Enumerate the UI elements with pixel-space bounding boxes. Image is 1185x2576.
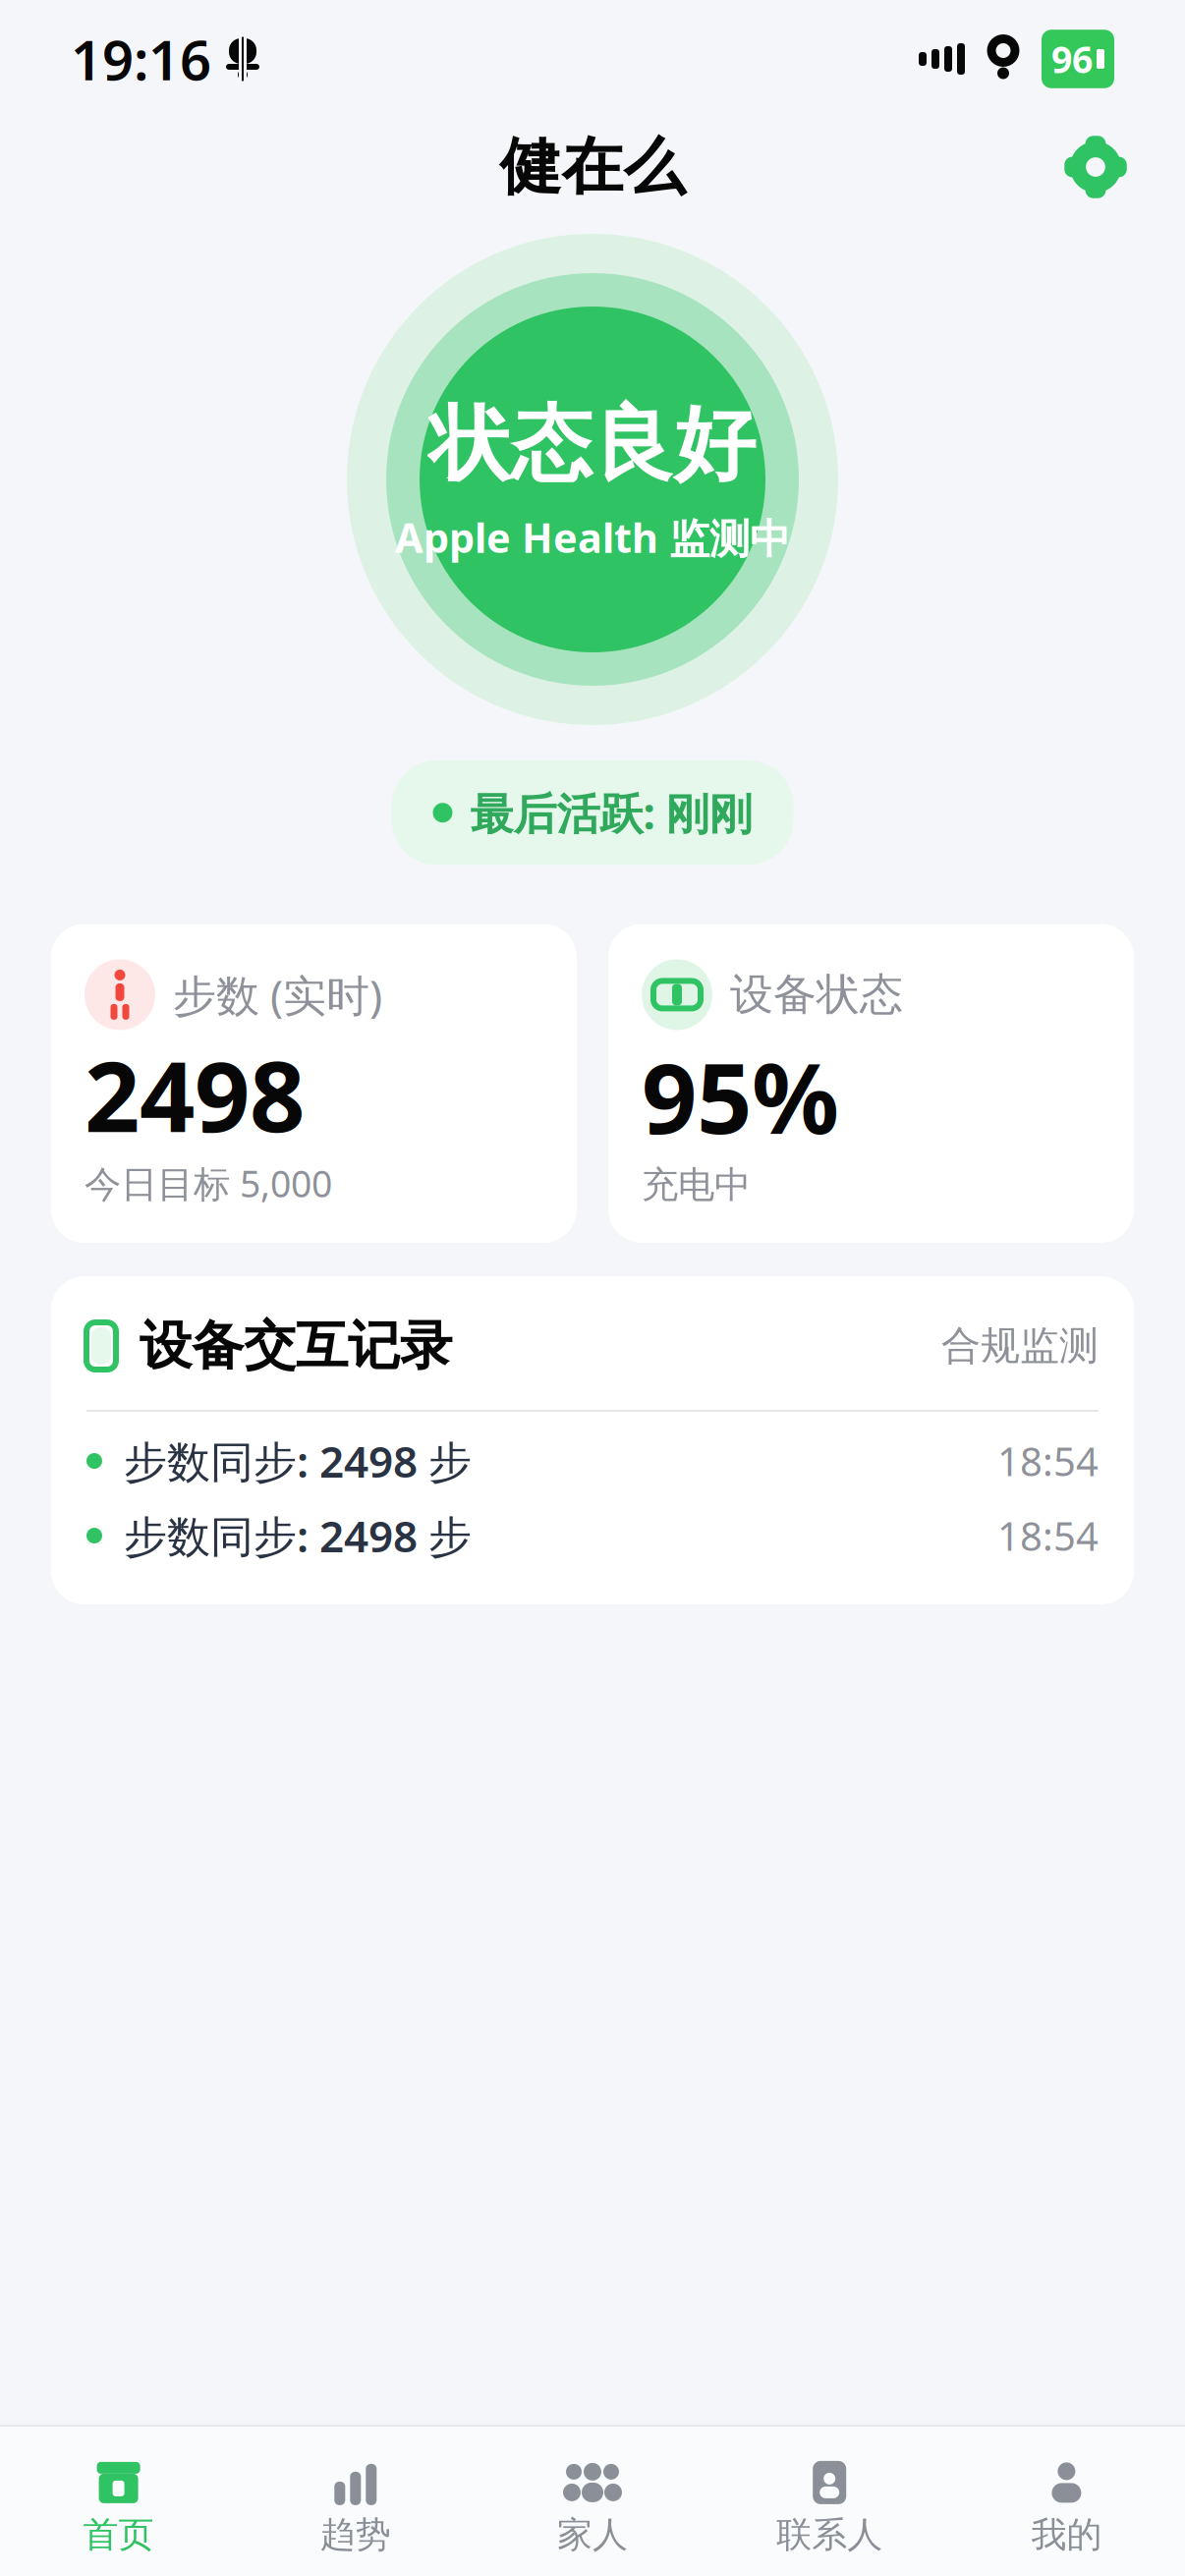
staticText: Apple Health 监测中 <box>395 510 790 564</box>
staticText: 健在么 <box>500 129 685 205</box>
staticText: 今日目标 5,000 <box>85 1159 332 1208</box>
button[interactable]: 联系人 <box>711 2450 948 2566</box>
button[interactable]: 我的 <box>948 2450 1185 2566</box>
button[interactable]: 设置 <box>1053 125 1138 209</box>
staticText: 合规监测 <box>941 1322 1099 1370</box>
staticText: 步数同步: 2498 步 <box>124 1507 472 1564</box>
staticText: 18:54 <box>997 1435 1099 1487</box>
button[interactable]: 步数 (实时) <box>51 924 577 1243</box>
staticText: 我的 <box>1031 2513 1102 2556</box>
staticText: 首页 <box>83 2513 154 2556</box>
button[interactable]: 首页 <box>0 2450 237 2566</box>
staticText: 设备状态 <box>730 968 903 1021</box>
staticText: 充电中 <box>642 1162 751 1208</box>
staticText: 96 <box>1051 35 1093 83</box>
staticText: 家人 <box>557 2513 628 2556</box>
staticText: 步数同步: 2498 步 <box>124 1432 472 1490</box>
staticText: 18:54 <box>997 1510 1099 1562</box>
staticText: 19:16 <box>71 22 211 95</box>
button[interactable]: 最后活跃: 刚刚 <box>392 760 793 865</box>
button[interactable]: 趋势 <box>237 2450 474 2566</box>
staticText: 设备交互记录 <box>140 1314 452 1378</box>
staticText: 联系人 <box>776 2513 883 2556</box>
staticText: 2498 <box>85 1030 305 1159</box>
button[interactable]: 设备状态 <box>608 924 1134 1243</box>
staticText: 95% <box>642 1032 839 1161</box>
staticText: 最后活跃: 刚刚 <box>470 784 752 841</box>
button[interactable]: 家人 <box>474 2450 711 2566</box>
staticText: 趋势 <box>320 2513 391 2556</box>
staticText: 状态良好 <box>429 395 756 494</box>
staticText: 步数 (实时) <box>173 966 382 1023</box>
